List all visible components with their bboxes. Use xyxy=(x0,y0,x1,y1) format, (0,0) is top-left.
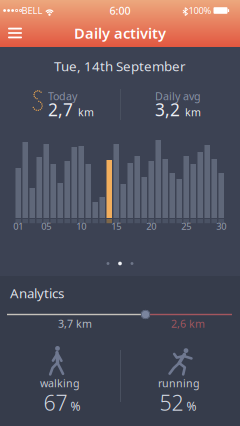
staticText: 30 xyxy=(216,220,226,232)
staticText: 3,2 km xyxy=(155,98,201,121)
staticText: 3,7 km xyxy=(58,316,92,331)
staticText: 6:00 xyxy=(109,3,130,18)
staticText: walking xyxy=(40,376,80,390)
staticText: BELL xyxy=(21,4,42,17)
staticText: 52 % xyxy=(159,388,196,417)
button[interactable]: Page 2 of 3 xyxy=(102,257,138,269)
staticText: running xyxy=(158,376,200,390)
staticText: Tue, 14th September xyxy=(54,57,186,75)
staticText: 15 xyxy=(111,220,121,232)
staticText: Daily avg xyxy=(155,89,201,103)
staticText: 67 % xyxy=(43,388,80,417)
staticText: 01 xyxy=(13,220,23,232)
button[interactable]: Menu xyxy=(2,22,28,44)
button[interactable]: Distance slider xyxy=(141,310,150,319)
staticText: 10 xyxy=(76,220,86,232)
staticText: 2,6 km xyxy=(171,316,205,331)
staticText: 05 xyxy=(41,220,51,232)
staticText: Analytics xyxy=(10,284,64,302)
staticText: 2,7 km xyxy=(48,98,94,121)
staticText: 20 xyxy=(146,220,156,232)
staticText: 25 xyxy=(181,220,191,232)
staticText: Daily activity xyxy=(74,23,166,43)
staticText: Today xyxy=(48,89,77,103)
staticText: 100% xyxy=(188,4,211,17)
